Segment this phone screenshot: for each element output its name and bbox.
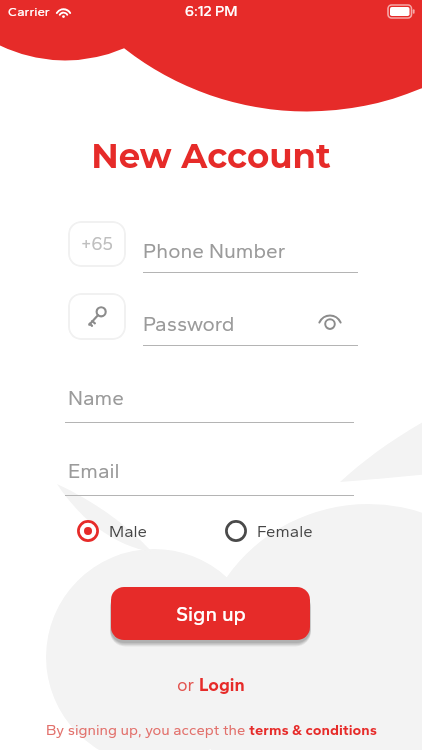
- button[interactable]: Male: [77, 520, 147, 542]
- staticText: Name: [68, 385, 124, 410]
- button[interactable]: +65: [68, 221, 126, 267]
- staticText: Phone Number: [143, 238, 286, 263]
- button[interactable]: Show password: [311, 302, 349, 340]
- staticText: +65: [81, 233, 113, 255]
- staticText: 6:12 PM: [185, 2, 238, 20]
- staticText: Sign up: [176, 602, 246, 626]
- button[interactable]: Login: [199, 674, 245, 696]
- staticText: Email: [68, 458, 120, 483]
- staticText: By signing up, you accept the: [46, 721, 249, 739]
- staticText: Password: [143, 311, 235, 336]
- staticText: Female: [257, 521, 313, 541]
- staticText: Login: [199, 674, 245, 696]
- staticText: New Account: [0, 135, 422, 176]
- staticText: Carrier: [8, 3, 50, 19]
- staticText: Male: [109, 521, 147, 541]
- button[interactable]: Password: [68, 293, 126, 340]
- staticText: or: [177, 674, 199, 696]
- button[interactable]: Female: [225, 520, 313, 542]
- button[interactable]: Sign up: [111, 587, 310, 640]
- button[interactable]: terms & conditions: [249, 721, 377, 739]
- staticText: terms & conditions: [249, 721, 377, 739]
